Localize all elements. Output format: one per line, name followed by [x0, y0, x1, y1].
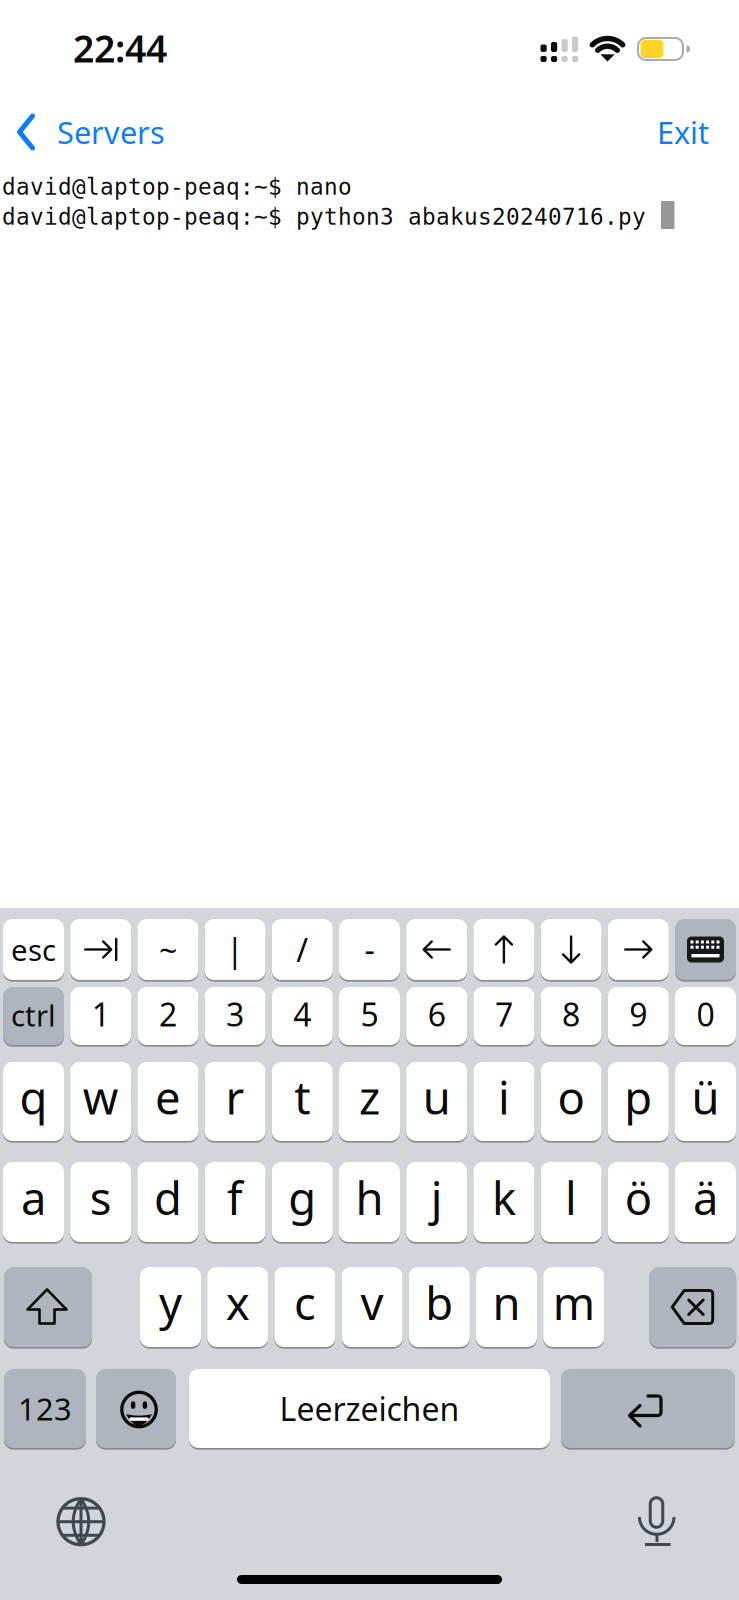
staticText: 22:44	[73, 23, 167, 73]
button[interactable]: b	[409, 1267, 470, 1347]
button[interactable]: q	[3, 1062, 64, 1141]
button[interactable]: Dictation	[629, 1493, 685, 1549]
staticText: 5	[360, 993, 378, 1035]
button[interactable]: ü	[675, 1062, 736, 1141]
button[interactable]: a	[3, 1162, 64, 1242]
staticText: Exit	[657, 112, 709, 152]
staticText: david@laptop-peaq:~$ nano	[2, 174, 352, 200]
staticText: f	[227, 1167, 243, 1228]
staticText: y	[159, 1272, 182, 1333]
button[interactable]: e	[137, 1062, 198, 1141]
staticText: x	[226, 1272, 250, 1333]
staticText: m	[553, 1272, 595, 1333]
button[interactable]: 3	[205, 987, 266, 1045]
button[interactable]: m	[543, 1267, 604, 1347]
button[interactable]: 8	[541, 987, 602, 1045]
staticText: 2	[159, 993, 177, 1035]
staticText: 6	[428, 993, 446, 1035]
button[interactable]: f	[205, 1162, 266, 1242]
button[interactable]: x	[207, 1267, 268, 1347]
button[interactable]: i	[473, 1062, 534, 1141]
button[interactable]: w	[70, 1062, 131, 1141]
staticText: o	[558, 1067, 585, 1127]
staticText: t	[294, 1067, 310, 1127]
button[interactable]: Down arrow	[541, 919, 602, 980]
button[interactable]: ctrl	[3, 987, 64, 1045]
button[interactable]: Leerzeichen	[189, 1369, 550, 1448]
staticText: 0	[696, 993, 714, 1035]
staticText: 7	[495, 993, 513, 1035]
button[interactable]: -	[339, 919, 400, 980]
staticText: b	[425, 1272, 453, 1333]
staticText: s	[90, 1167, 112, 1228]
button[interactable]: y	[140, 1267, 201, 1347]
button[interactable]: 2	[137, 987, 198, 1045]
button[interactable]: j	[406, 1162, 467, 1242]
button[interactable]: Emoji	[96, 1369, 176, 1448]
button[interactable]: Up arrow	[473, 919, 534, 980]
button[interactable]: 123	[4, 1369, 86, 1448]
staticText: 4	[293, 993, 311, 1035]
staticText: c	[294, 1272, 316, 1333]
button[interactable]: /	[272, 919, 333, 980]
button[interactable]: Right arrow	[608, 919, 669, 980]
button[interactable]: Left arrow	[406, 919, 467, 980]
button[interactable]: v	[342, 1267, 403, 1347]
button[interactable]: r	[205, 1062, 266, 1141]
button[interactable]: 1	[70, 987, 131, 1045]
button[interactable]: h	[339, 1162, 400, 1242]
button[interactable]: ä	[675, 1162, 736, 1242]
button[interactable]: 0	[675, 987, 736, 1045]
button[interactable]: d	[137, 1162, 198, 1242]
button[interactable]: |	[205, 919, 266, 980]
button[interactable]: c	[274, 1267, 335, 1347]
staticText: r	[226, 1067, 245, 1127]
staticText: n	[492, 1272, 520, 1333]
staticText: z	[359, 1067, 380, 1127]
staticText: esc	[11, 930, 56, 969]
button[interactable]: Next keyboard	[53, 1494, 109, 1550]
button[interactable]: Return	[561, 1369, 735, 1448]
button[interactable]: Tab	[70, 919, 131, 980]
staticText: q	[19, 1067, 47, 1127]
staticText: |	[226, 928, 244, 971]
staticText: u	[423, 1067, 451, 1127]
button[interactable]: 4	[272, 987, 333, 1045]
button[interactable]: 9	[608, 987, 669, 1045]
button[interactable]: ~	[137, 919, 198, 980]
staticText: a	[21, 1167, 46, 1228]
button[interactable]: t	[272, 1062, 333, 1141]
staticText: e	[155, 1067, 181, 1127]
staticText: g	[288, 1167, 316, 1228]
staticText: 8	[562, 993, 580, 1035]
button[interactable]: 7	[473, 987, 534, 1045]
button[interactable]: Servers	[17, 112, 165, 152]
button[interactable]: p	[608, 1062, 669, 1141]
button[interactable]: 5	[339, 987, 400, 1045]
staticText: -	[364, 928, 374, 971]
button[interactable]: esc	[3, 919, 64, 980]
staticText: 3	[226, 993, 244, 1035]
button[interactable]: z	[339, 1062, 400, 1141]
button[interactable]: s	[70, 1162, 131, 1242]
button[interactable]: l	[541, 1162, 602, 1242]
button[interactable]: n	[476, 1267, 537, 1347]
button[interactable]: ö	[608, 1162, 669, 1242]
button[interactable]: g	[272, 1162, 333, 1242]
button[interactable]: Exit	[657, 112, 709, 152]
staticText: 123	[18, 1388, 72, 1429]
button[interactable]: Shift	[4, 1267, 92, 1347]
staticText: h	[355, 1167, 383, 1228]
staticText: david@laptop-peaq:~$ python3 abakus20240…	[2, 204, 646, 230]
button[interactable]: u	[406, 1062, 467, 1141]
button[interactable]: k	[473, 1162, 534, 1242]
button[interactable]: 6	[406, 987, 467, 1045]
staticText: ctrl	[11, 995, 56, 1034]
button[interactable]: Delete	[649, 1267, 736, 1347]
button[interactable]: o	[541, 1062, 602, 1141]
button[interactable]: Dismiss keyboard	[675, 919, 736, 980]
staticText: Servers	[57, 112, 165, 152]
staticText: Leerzeichen	[279, 1387, 459, 1430]
staticText: ä	[693, 1167, 718, 1228]
staticText: j	[431, 1167, 443, 1228]
